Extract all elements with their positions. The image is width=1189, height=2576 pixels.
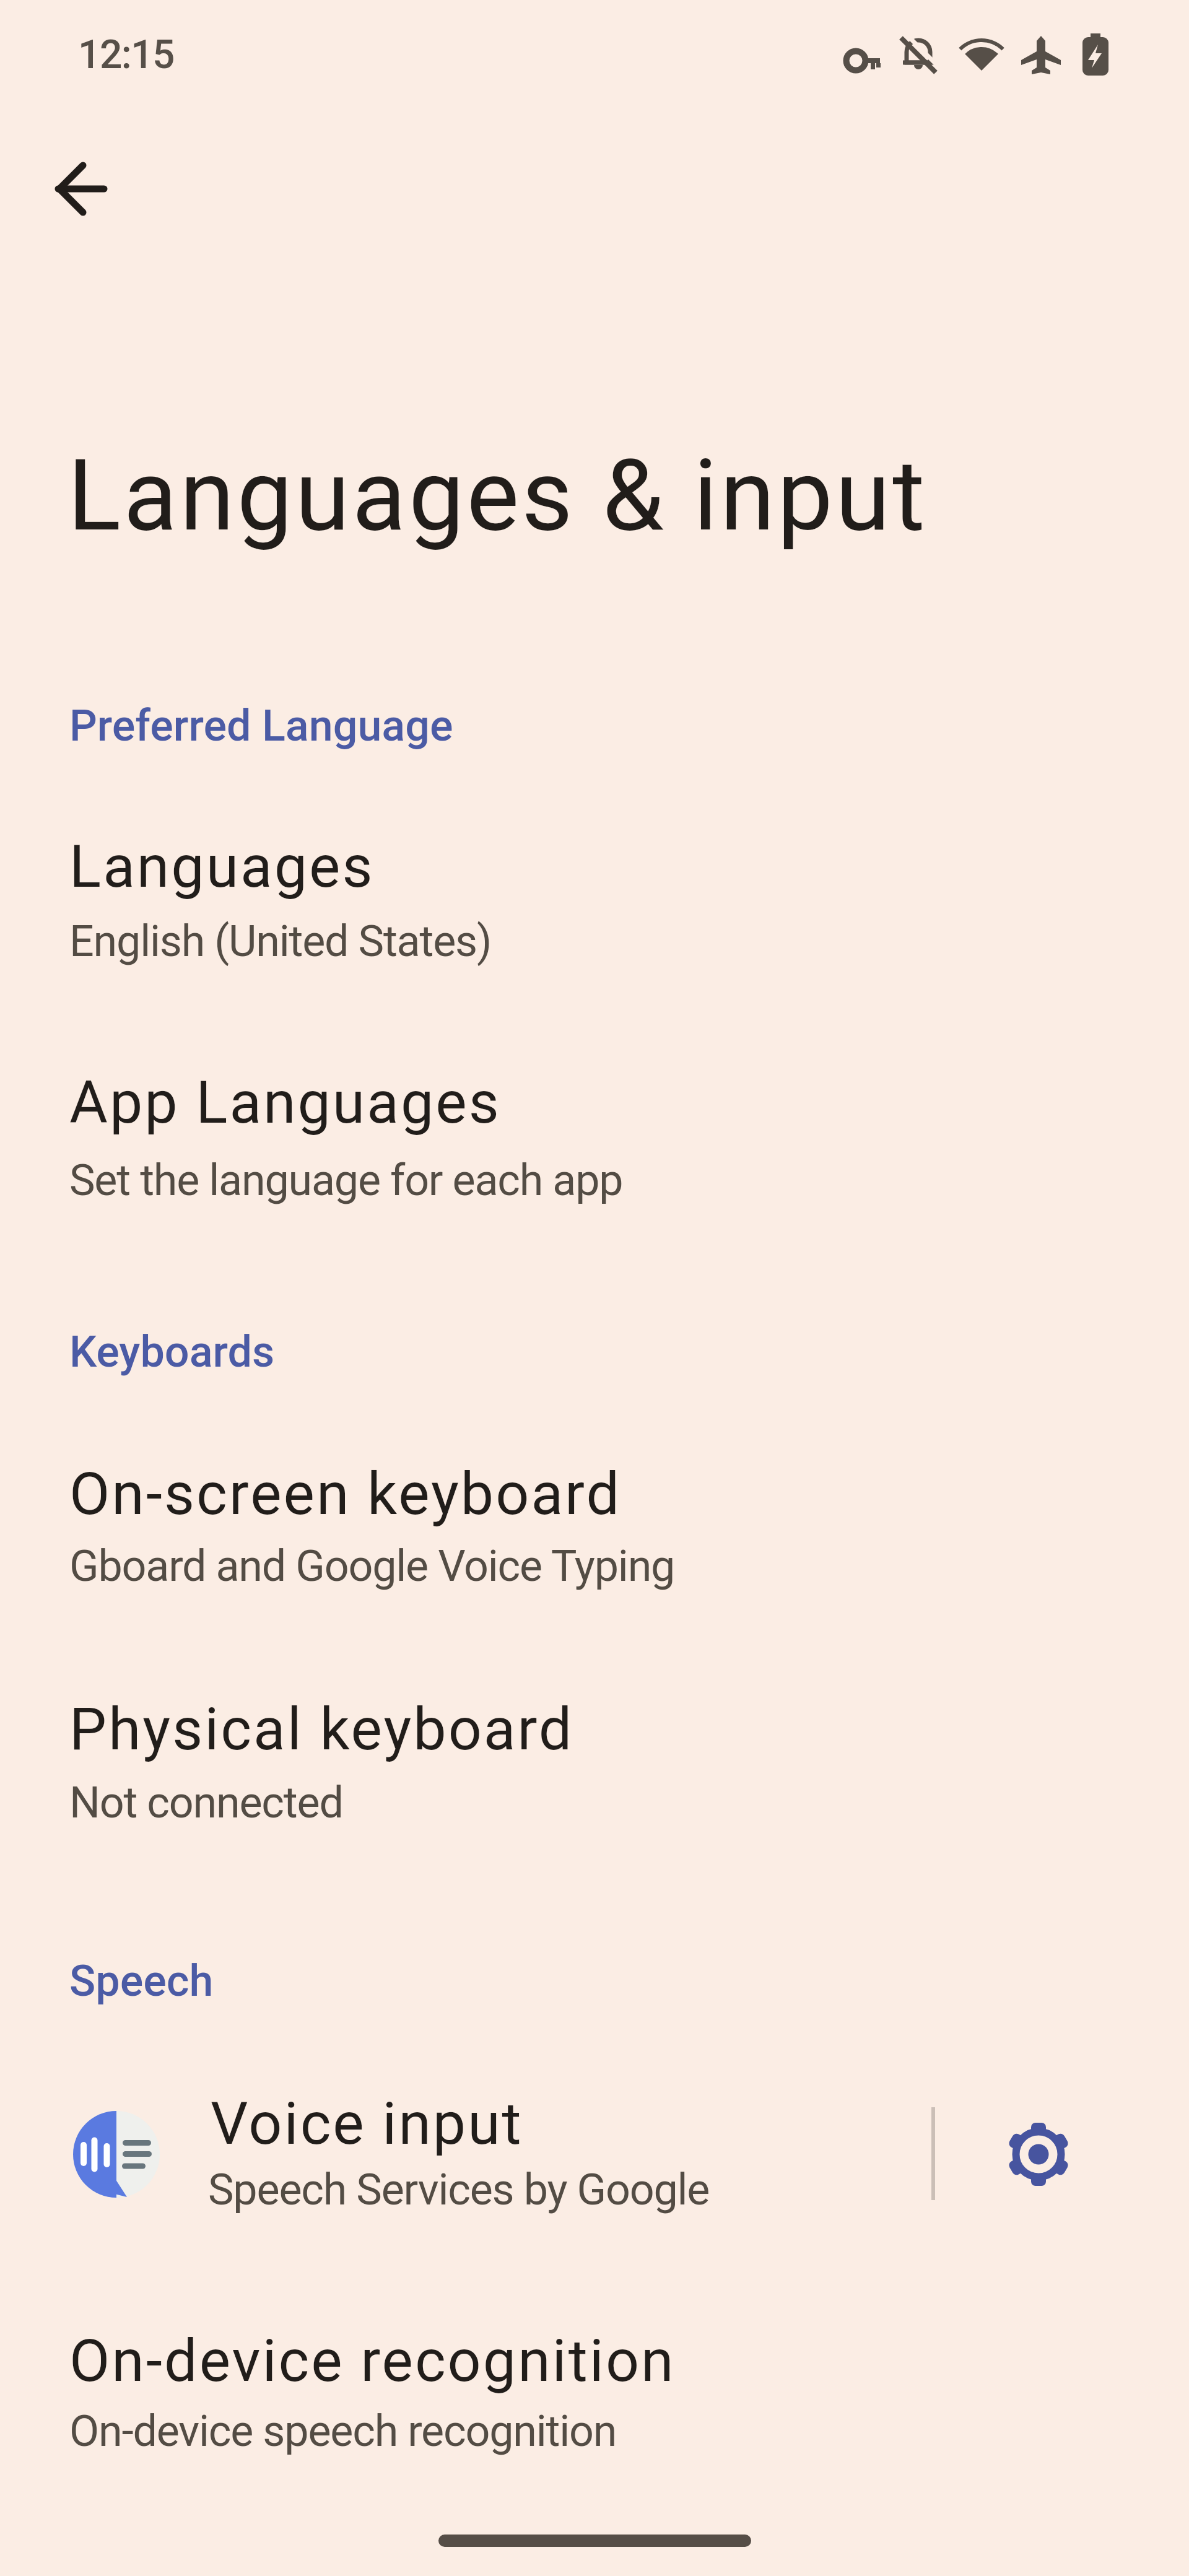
staticText: English (United States) <box>69 916 492 967</box>
staticText: Speech Services by Google <box>208 2164 710 2215</box>
staticText: Keyboards <box>69 1326 275 1377</box>
staticText: On-screen keyboard <box>69 1460 621 1528</box>
button[interactable]: Languages <box>0 822 1189 986</box>
staticText: App Languages <box>69 1068 501 1137</box>
staticText: Languages <box>69 832 375 901</box>
button[interactable]: Voice input <box>0 2078 923 2232</box>
staticText: Not connected <box>69 1777 343 1828</box>
staticText: Speech <box>69 1956 214 2006</box>
button[interactable]: Physical keyboard <box>0 1684 1189 1847</box>
button[interactable] <box>994 2110 1083 2199</box>
button[interactable]: On-screen keyboard <box>0 1449 1189 1611</box>
staticText: On-device recognition <box>69 2326 676 2395</box>
staticText: Languages & input <box>68 438 928 554</box>
staticText: Preferred Language <box>69 700 453 751</box>
button[interactable]: On-device recognition <box>0 2316 1189 2476</box>
staticText: 12:15 <box>78 32 174 78</box>
staticText: Set the language for each app <box>69 1155 623 1206</box>
button[interactable]: App Languages <box>0 1058 1189 1225</box>
staticText: Voice input <box>211 2089 523 2158</box>
staticText: Gboard and Google Voice Typing <box>69 1541 675 1591</box>
staticText: On-device speech recognition <box>69 2406 617 2456</box>
staticText: Physical keyboard <box>69 1695 574 1764</box>
button[interactable] <box>41 149 121 229</box>
